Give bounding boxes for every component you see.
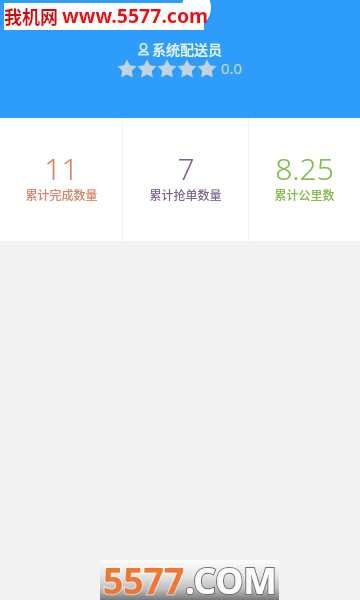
staticText: .COM: [185, 556, 277, 596]
button[interactable]: 11: [0, 151, 122, 209]
staticText: 累计抢单数量: [149, 186, 222, 203]
staticText: 8.25: [275, 148, 334, 189]
staticText: 系统配送员: [152, 39, 222, 59]
staticText: 累计公里数: [274, 186, 335, 203]
staticText: 5577: [103, 556, 185, 596]
staticText: 我机网: [4, 3, 58, 29]
button[interactable]: 7: [123, 151, 248, 209]
button[interactable]: 系统配送员: [138, 39, 222, 59]
staticText: 5577: [103, 556, 185, 596]
staticText: 7: [177, 148, 195, 189]
staticText: www.5577.com: [62, 2, 209, 29]
staticText: .COM: [185, 556, 277, 596]
staticText: 0.0: [221, 58, 243, 78]
staticText: 累计完成数量: [25, 186, 98, 203]
button[interactable]: 8.25: [249, 151, 360, 209]
staticText: 11: [44, 148, 79, 189]
